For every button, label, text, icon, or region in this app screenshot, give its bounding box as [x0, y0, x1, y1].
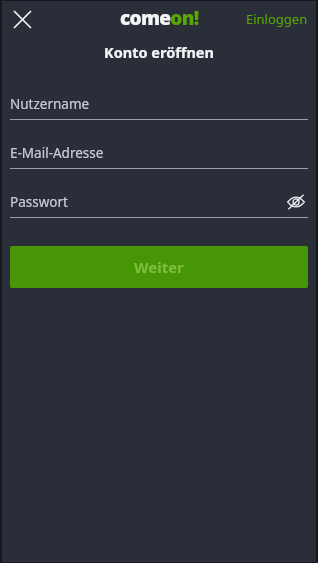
button[interactable]: Show password: [284, 191, 308, 213]
button[interactable]: E-Mail-Adresse: [2, 142, 316, 169]
button[interactable]: Nutzername: [2, 93, 316, 120]
button[interactable]: Passwort: [2, 191, 316, 218]
button[interactable]: Close: [4, 1, 40, 37]
staticText: Konto eröffnen: [104, 42, 214, 62]
button[interactable]: comeon!: [120, 5, 199, 31]
staticText: Passwort: [10, 193, 68, 211]
staticText: Weiter: [134, 257, 184, 277]
button[interactable]: Weiter: [10, 246, 308, 288]
button[interactable]: Einloggen: [238, 4, 316, 34]
staticText: Einloggen: [246, 10, 308, 28]
staticText: comeon!: [120, 5, 199, 31]
staticText: E-Mail-Adresse: [10, 144, 104, 162]
staticText: Nutzername: [10, 95, 90, 113]
